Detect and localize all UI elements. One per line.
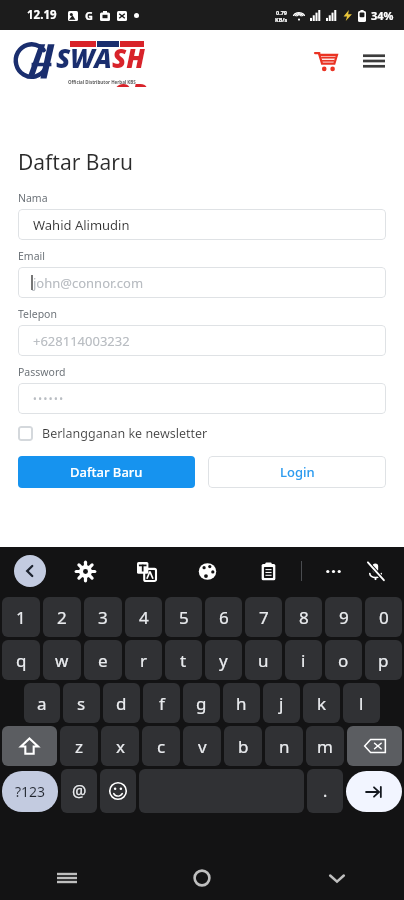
staticText: Email <box>18 249 45 263</box>
button[interactable]: v <box>183 726 221 766</box>
button[interactable]: 1 <box>2 597 40 637</box>
button[interactable]: 9 <box>325 597 362 637</box>
staticText: . <box>323 780 328 802</box>
staticText: i <box>301 649 306 672</box>
staticText: 2 <box>57 606 67 629</box>
button[interactable]: p <box>365 640 402 680</box>
button[interactable]: Settings <box>70 556 100 586</box>
staticText: e <box>98 649 108 672</box>
staticText: 8 <box>299 606 309 629</box>
button[interactable]: Theme <box>192 556 222 586</box>
staticText: z <box>75 735 83 758</box>
button[interactable]: w <box>43 640 81 680</box>
button[interactable]: c <box>142 726 180 766</box>
staticText: x <box>116 735 125 758</box>
staticText: •••••• <box>33 392 65 406</box>
button[interactable]: john@connor.com <box>18 267 386 298</box>
staticText: john@connor.com <box>33 274 144 292</box>
button[interactable]: f <box>143 683 180 723</box>
staticText: c <box>157 735 166 758</box>
button[interactable]: b <box>224 726 262 766</box>
button[interactable]: h <box>223 683 260 723</box>
button[interactable]: +628114003232 <box>18 325 386 356</box>
staticText: +628114003232 <box>33 332 130 350</box>
button[interactable]: u <box>245 640 282 680</box>
button[interactable]: 8 <box>285 597 322 637</box>
staticText: 9 <box>339 606 349 629</box>
staticText: h <box>236 692 247 715</box>
staticText: Nama <box>18 191 48 205</box>
button[interactable]: 5 <box>165 597 202 637</box>
button[interactable]: j <box>263 683 300 723</box>
button[interactable]: Login <box>208 456 386 488</box>
staticText: 4 <box>139 606 149 629</box>
staticText: b <box>238 735 249 758</box>
button[interactable]: o <box>325 640 362 680</box>
button[interactable]: •••••• <box>18 383 386 414</box>
button[interactable]: Wahid Alimudin <box>18 209 386 240</box>
staticText: k <box>317 692 327 715</box>
button[interactable]: Cart <box>308 43 344 79</box>
button[interactable]: l <box>343 683 380 723</box>
button[interactable]: y <box>205 640 242 680</box>
button[interactable]: Enter <box>346 771 402 812</box>
staticText: t <box>180 649 187 672</box>
button[interactable]: e <box>84 640 122 680</box>
staticText: u <box>258 649 269 672</box>
staticText: m <box>317 735 333 758</box>
button[interactable]: x <box>101 726 139 766</box>
button[interactable]: Hide keyboard <box>269 855 404 900</box>
button[interactable]: ?123 <box>2 771 58 812</box>
staticText: s <box>77 692 86 715</box>
button[interactable]: g <box>183 683 220 723</box>
button[interactable]: Daftar Baru <box>18 456 195 488</box>
button[interactable]: . <box>307 769 343 813</box>
button[interactable]: Menu <box>356 43 392 79</box>
button[interactable]: s <box>63 683 100 723</box>
button[interactable]: Back <box>14 555 46 587</box>
button[interactable]: Backspace <box>347 726 402 766</box>
button[interactable]: 2 <box>43 597 81 637</box>
button[interactable]: d <box>103 683 140 723</box>
button[interactable]: Voice input off <box>360 556 390 586</box>
staticText: 0 <box>379 606 389 629</box>
button[interactable]: Shift <box>2 726 57 766</box>
button[interactable]: Recents <box>0 855 134 900</box>
button[interactable]: Home <box>134 855 269 900</box>
staticText: q <box>16 649 27 672</box>
staticText: ?123 <box>15 782 46 801</box>
button[interactable]: 4 <box>125 597 162 637</box>
staticText: v <box>198 735 207 758</box>
button[interactable]: m <box>306 726 344 766</box>
button[interactable]: z <box>60 726 98 766</box>
button[interactable]: Translate <box>131 556 161 586</box>
button[interactable]: a <box>24 683 60 723</box>
staticText: Telepon <box>18 307 57 321</box>
staticText: KB/s <box>275 16 288 23</box>
staticText: 6 <box>219 606 229 629</box>
button[interactable]: Emoji <box>100 769 136 813</box>
button[interactable]: n <box>265 726 303 766</box>
staticText: @ <box>72 780 87 802</box>
staticText: Daftar Baru <box>18 148 133 177</box>
staticText: SHOP <box>112 40 159 87</box>
button[interactable]: 7 <box>245 597 282 637</box>
button[interactable]: Clipboard <box>253 556 283 586</box>
button[interactable]: 0 <box>365 597 402 637</box>
staticText: o <box>338 649 349 672</box>
staticText: a <box>37 692 47 715</box>
button[interactable]: t <box>165 640 202 680</box>
button[interactable]: q <box>2 640 40 680</box>
button[interactable]: 6 <box>205 597 242 637</box>
staticText: w <box>55 649 69 672</box>
button[interactable]: i <box>285 640 322 680</box>
staticText: l <box>359 692 364 715</box>
button[interactable]: @ <box>61 769 97 813</box>
button[interactable]: Berlangganan ke newsletter <box>18 425 386 442</box>
button[interactable]: More options <box>318 556 348 586</box>
button[interactable]: k <box>303 683 340 723</box>
button[interactable]: r <box>125 640 162 680</box>
staticText: 34% <box>371 8 394 23</box>
button[interactable]: 3 <box>84 597 122 637</box>
